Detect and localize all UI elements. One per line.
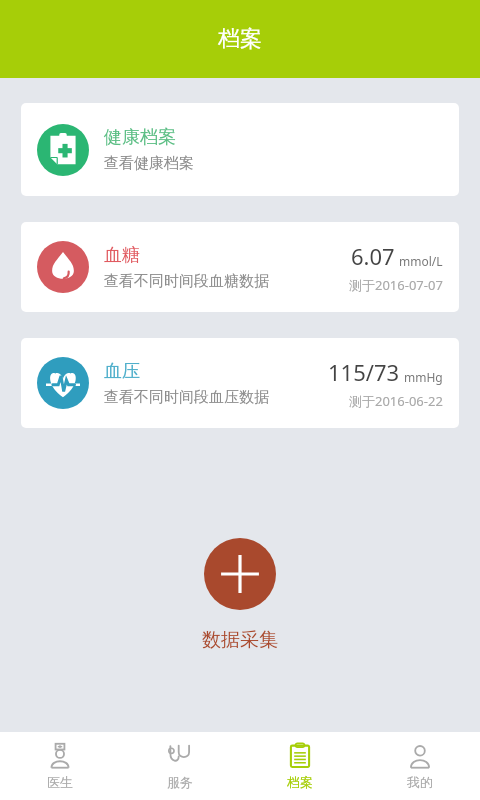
staticText: 档案 bbox=[287, 774, 313, 790]
button[interactable]: 医生 bbox=[0, 732, 120, 800]
staticText: mmHg bbox=[404, 369, 443, 385]
staticText: 服务 bbox=[167, 774, 193, 790]
staticText: 测于2016-06-22 bbox=[349, 392, 443, 410]
button[interactable]: 我的 bbox=[360, 732, 480, 800]
staticText: 查看健康档案 bbox=[104, 154, 194, 173]
staticText: 115/73 bbox=[328, 357, 400, 387]
button[interactable]: 服务 bbox=[120, 732, 240, 800]
staticText: 血压 bbox=[104, 360, 140, 383]
button[interactable]: 数据采集 bbox=[204, 538, 276, 610]
staticText: 血糖 bbox=[104, 244, 140, 267]
button[interactable]: 血压 bbox=[21, 338, 459, 428]
button[interactable]: 血糖 bbox=[21, 222, 459, 312]
staticText: 查看不同时间段血压数据 bbox=[104, 388, 269, 407]
staticText: mmol/L bbox=[399, 253, 443, 269]
staticText: 我的 bbox=[407, 774, 433, 790]
staticText: 6.07 bbox=[351, 241, 395, 271]
staticText: 测于2016-07-07 bbox=[349, 276, 443, 294]
staticText: 查看不同时间段血糖数据 bbox=[104, 272, 269, 291]
button[interactable]: 档案 bbox=[240, 732, 360, 800]
staticText: 数据采集 bbox=[202, 628, 278, 652]
button[interactable]: 健康档案 bbox=[21, 103, 459, 196]
staticText: 档案 bbox=[218, 25, 262, 53]
staticText: 医生 bbox=[47, 774, 73, 790]
staticText: 健康档案 bbox=[104, 126, 176, 149]
